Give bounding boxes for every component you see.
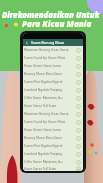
staticText: Suara Pleci Ngalas Ngerol [24,80,76,84]
button[interactable]: Kicau Kenari Gacor Juara [23,126,83,134]
staticText: Direkomendasikan Untuk [2,10,100,21]
staticText: Masteran Burung Kicau Gacor [24,112,76,116]
staticText: Suara Pleci Ngalas Ngerol [24,144,76,148]
staticText: Para Kicau Mania [22,18,92,29]
button[interactable]: Burung Murai Batu Gacor [23,134,83,142]
button[interactable]: Kicau Kenari Gacor Juara [23,62,83,70]
staticText: Kacer Gacor Full Isian [24,167,76,171]
staticText: Cililin Gacor Masteran Jitu [24,96,76,100]
staticText: Kacer Gacor Full Isian [24,104,76,108]
staticText: Cililin Gacor Masteran Jitu [24,160,76,164]
button[interactable]: Lovebird Ngekek Panjang [23,150,83,158]
staticText: Lovebird Ngekek Panjang [24,88,76,92]
button[interactable]: Cililin Gacor Masteran Jitu [23,158,83,166]
button[interactable]: Masteran Burung Kicau Gacor [23,110,83,118]
staticText: Burung Murai Batu Gacor [24,72,76,76]
staticText: Suara Cucak Ijo Gacor Pikat [24,56,76,60]
staticText: Kicau Kenari Gacor Juara [24,128,76,132]
button[interactable]: Cililin Gacor Masteran Jitu [23,94,83,102]
button[interactable]: Suara Cucak Ijo Gacor Pikat [23,54,83,62]
button[interactable]: Back [25,41,29,45]
button[interactable]: Burung Murai Batu Gacor [23,70,83,78]
button[interactable]: Masteran Burung Kicau Gacor [23,46,83,54]
staticText: Burung Murai Batu Gacor [24,136,76,140]
button[interactable]: Suara Cucak Ijo Gacor Pikat [23,118,83,126]
button[interactable]: Lovebird Ngekek Panjang [23,86,83,94]
staticText: Suara Burung Kicau [31,40,65,45]
staticText: Kicau Kenari Gacor Juara [24,64,76,68]
staticText: Suara Cucak Ijo Gacor Pikat [24,120,76,124]
button[interactable]: Kacer Gacor Full Isian [23,166,83,171]
button[interactable]: Suara Pleci Ngalas Ngerol [23,142,83,150]
staticText: Lovebird Ngekek Panjang [24,152,76,156]
staticText: Masteran Burung Kicau Gacor [24,48,76,52]
button[interactable]: Suara Pleci Ngalas Ngerol [23,78,83,86]
button[interactable]: Kacer Gacor Full Isian [23,102,83,110]
